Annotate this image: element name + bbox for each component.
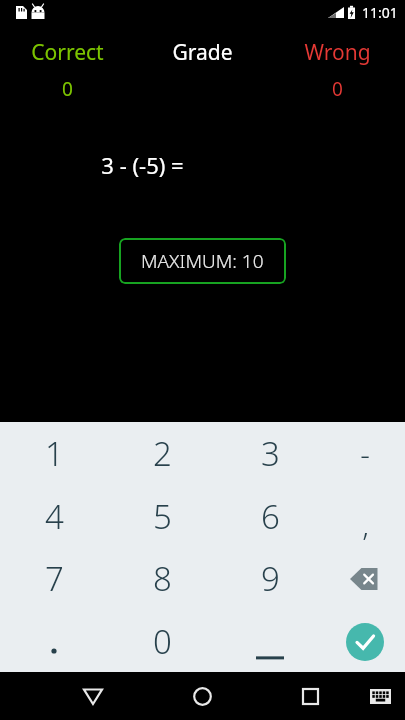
button[interactable]: , [329, 485, 401, 548]
button[interactable]: Back [63, 672, 123, 720]
staticText: 4 [45, 494, 64, 539]
staticText: 3 [261, 431, 280, 476]
staticText: 11:01 [362, 3, 398, 22]
staticText: 5 [153, 494, 172, 539]
staticText: , [362, 504, 369, 545]
staticText: 3 - (-5) = [101, 150, 184, 180]
button[interactable]: Underscore [234, 610, 306, 673]
button[interactable]: 5 [126, 485, 198, 548]
button[interactable]: MAXIMUM: 10 [119, 238, 286, 284]
button[interactable]: - [329, 422, 401, 485]
button[interactable]: 8 [126, 547, 198, 610]
staticText: 7 [45, 556, 64, 601]
button[interactable]: Switch keyboard [357, 672, 403, 720]
staticText: Wrong [304, 38, 371, 67]
button[interactable]: 3 [234, 422, 306, 485]
staticText: 1 [45, 431, 64, 476]
button[interactable]: 4 [18, 485, 90, 548]
staticText: 0 [332, 76, 343, 102]
button[interactable]: Backspace [335, 547, 395, 610]
staticText: Correct [31, 38, 104, 67]
button[interactable]: 0 [126, 610, 198, 673]
button[interactable]: 2 [126, 422, 198, 485]
button[interactable]: 9 [234, 547, 306, 610]
button[interactable] [18, 610, 90, 673]
staticText: MAXIMUM: 10 [141, 248, 264, 274]
button[interactable]: Home [172, 672, 232, 720]
button[interactable]: Recent apps [283, 672, 337, 720]
staticText: Grade [172, 38, 233, 67]
button[interactable]: Submit [334, 610, 396, 673]
staticText: 0 [62, 76, 73, 102]
staticText: 8 [153, 556, 172, 601]
staticText: 9 [261, 556, 280, 601]
button[interactable]: 7 [18, 547, 90, 610]
staticText: - [360, 433, 370, 474]
button[interactable]: 1 [18, 422, 90, 485]
button[interactable]: 6 [234, 485, 306, 548]
staticText: 6 [261, 494, 280, 539]
staticText: 2 [153, 431, 172, 476]
staticText: 0 [153, 619, 172, 664]
